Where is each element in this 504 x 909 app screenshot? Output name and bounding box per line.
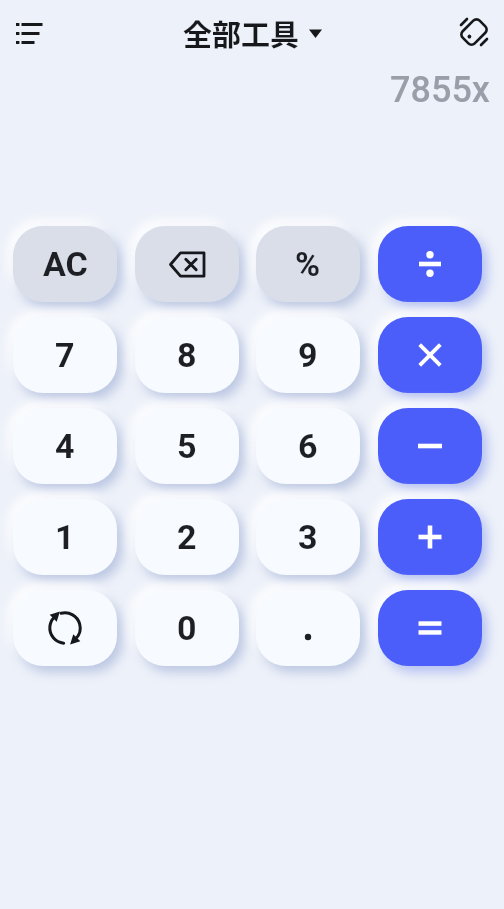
button[interactable]	[256, 590, 360, 666]
button[interactable]	[378, 590, 482, 666]
staticText: 9	[298, 335, 318, 375]
button[interactable]: 6	[256, 408, 360, 484]
staticText: %	[295, 244, 321, 284]
staticText: 1	[55, 517, 75, 557]
staticText: 6	[298, 426, 318, 466]
button[interactable]	[8, 13, 48, 53]
button[interactable]	[454, 12, 494, 52]
button[interactable]: 1	[13, 499, 117, 575]
staticText: 3	[298, 517, 318, 557]
button[interactable]: 3	[256, 499, 360, 575]
button[interactable]	[13, 590, 117, 666]
button[interactable]	[378, 408, 482, 484]
button[interactable]: 0	[135, 590, 239, 666]
button[interactable]	[378, 226, 482, 302]
button[interactable]: 5	[135, 408, 239, 484]
button[interactable]: AC	[13, 226, 117, 302]
staticText: 全部工具	[183, 12, 300, 54]
button[interactable]: 9	[256, 317, 360, 393]
button[interactable]: 8	[135, 317, 239, 393]
button[interactable]	[378, 317, 482, 393]
staticText: 7	[55, 335, 75, 375]
staticText: 0	[177, 608, 197, 648]
button[interactable]	[135, 226, 239, 302]
button[interactable]: 4	[13, 408, 117, 484]
button[interactable]: 2	[135, 499, 239, 575]
staticText: 5	[177, 426, 197, 466]
staticText: 8	[177, 335, 197, 375]
staticText: 4	[55, 426, 75, 466]
button[interactable]	[378, 499, 482, 575]
button[interactable]: %	[256, 226, 360, 302]
staticText: AC	[43, 244, 88, 284]
staticText: 7855x	[390, 69, 490, 111]
staticText: 2	[177, 517, 197, 557]
button[interactable]: 全部工具	[183, 12, 322, 54]
button[interactable]: 7	[13, 317, 117, 393]
